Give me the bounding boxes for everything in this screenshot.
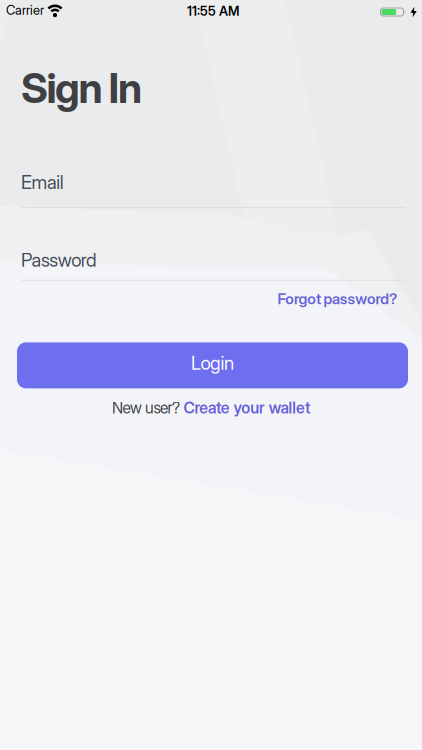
button[interactable]: Forgot password? <box>277 290 397 308</box>
staticText: Sign In <box>21 63 142 113</box>
staticText: New user? <box>112 398 183 417</box>
button[interactable]: Email <box>0 171 405 208</box>
staticText: Login <box>191 352 234 374</box>
button[interactable]: Login <box>17 342 408 388</box>
staticText: 11:55 AM <box>187 3 239 19</box>
staticText: Email <box>21 171 64 194</box>
staticText: Create your wallet <box>183 398 310 417</box>
button[interactable]: Password <box>0 249 405 281</box>
staticText: Forgot password? <box>277 290 397 308</box>
staticText: Password <box>21 249 97 271</box>
staticText: Carrier <box>6 2 44 18</box>
button[interactable]: Create your wallet <box>183 398 310 417</box>
